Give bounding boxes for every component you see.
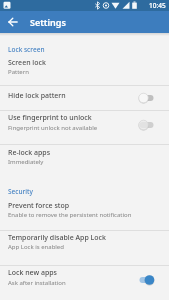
staticText: Temporarily disable App Lock bbox=[8, 233, 106, 243]
staticText: App Lock is enabled bbox=[8, 243, 64, 251]
staticText: 10:45 bbox=[149, 1, 166, 10]
button[interactable] bbox=[0, 56, 169, 85]
staticText: Fingerprint unlock not available bbox=[8, 124, 98, 132]
staticText: Lock screen bbox=[8, 45, 45, 54]
button[interactable] bbox=[0, 11, 169, 33]
staticText: Lock new apps bbox=[8, 268, 58, 278]
staticText: Ask after installation bbox=[8, 279, 66, 287]
staticText: Use fingerprint to unlock bbox=[8, 113, 92, 123]
button[interactable] bbox=[0, 266, 169, 298]
staticText: Settings bbox=[30, 16, 66, 28]
staticText: Screen lock bbox=[8, 58, 46, 68]
button[interactable] bbox=[0, 111, 169, 144]
button[interactable] bbox=[0, 196, 169, 230]
staticText: Hide lock pattern bbox=[8, 91, 66, 101]
staticText: Enable to remove the persistent notifica… bbox=[8, 211, 132, 219]
button[interactable] bbox=[0, 231, 169, 265]
staticText: Security bbox=[8, 187, 33, 196]
staticText: Pattern bbox=[8, 68, 29, 76]
button[interactable] bbox=[0, 145, 169, 176]
staticText: Immediately bbox=[8, 158, 44, 166]
button[interactable] bbox=[0, 85, 169, 110]
staticText: Prevent force stop bbox=[8, 201, 70, 211]
staticText: Re-lock apps bbox=[8, 148, 51, 158]
